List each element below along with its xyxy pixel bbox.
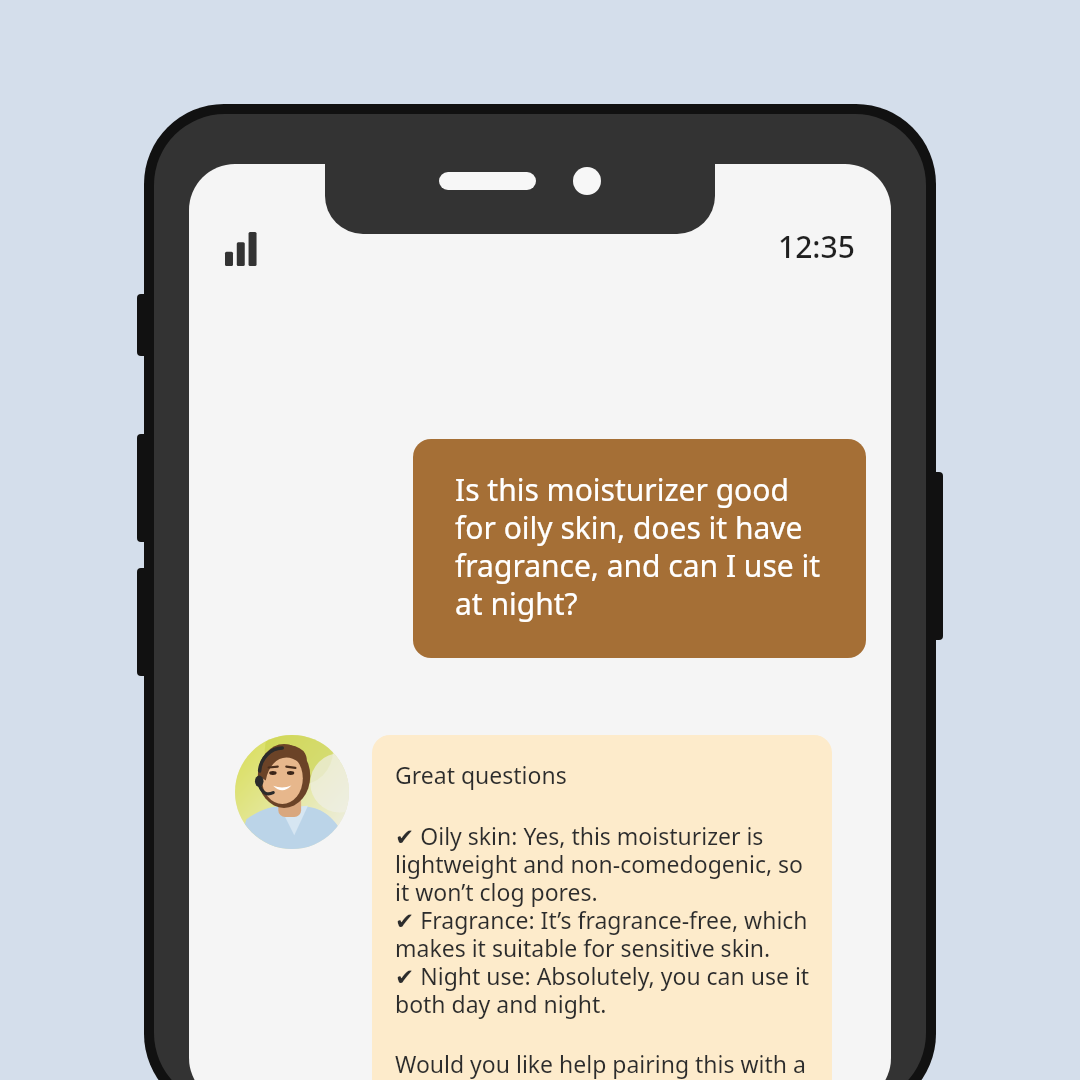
button[interactable]: Great questions: [372, 735, 832, 1080]
staticText: Would you like help pairing this with a …: [395, 1048, 814, 1080]
button[interactable]: Is this moisturizer good for oily skin, …: [413, 439, 866, 658]
button[interactable]: Support agent avatar: [235, 735, 349, 849]
other: Signal strength: [225, 232, 263, 266]
staticText: Great questions: [395, 759, 567, 790]
staticText: Is this moisturizer good for oily skin, …: [455, 469, 836, 624]
staticText: ✔ Oily skin: Yes, this moisturizer is li…: [395, 820, 814, 1020]
staticText: 12:35: [778, 226, 855, 267]
